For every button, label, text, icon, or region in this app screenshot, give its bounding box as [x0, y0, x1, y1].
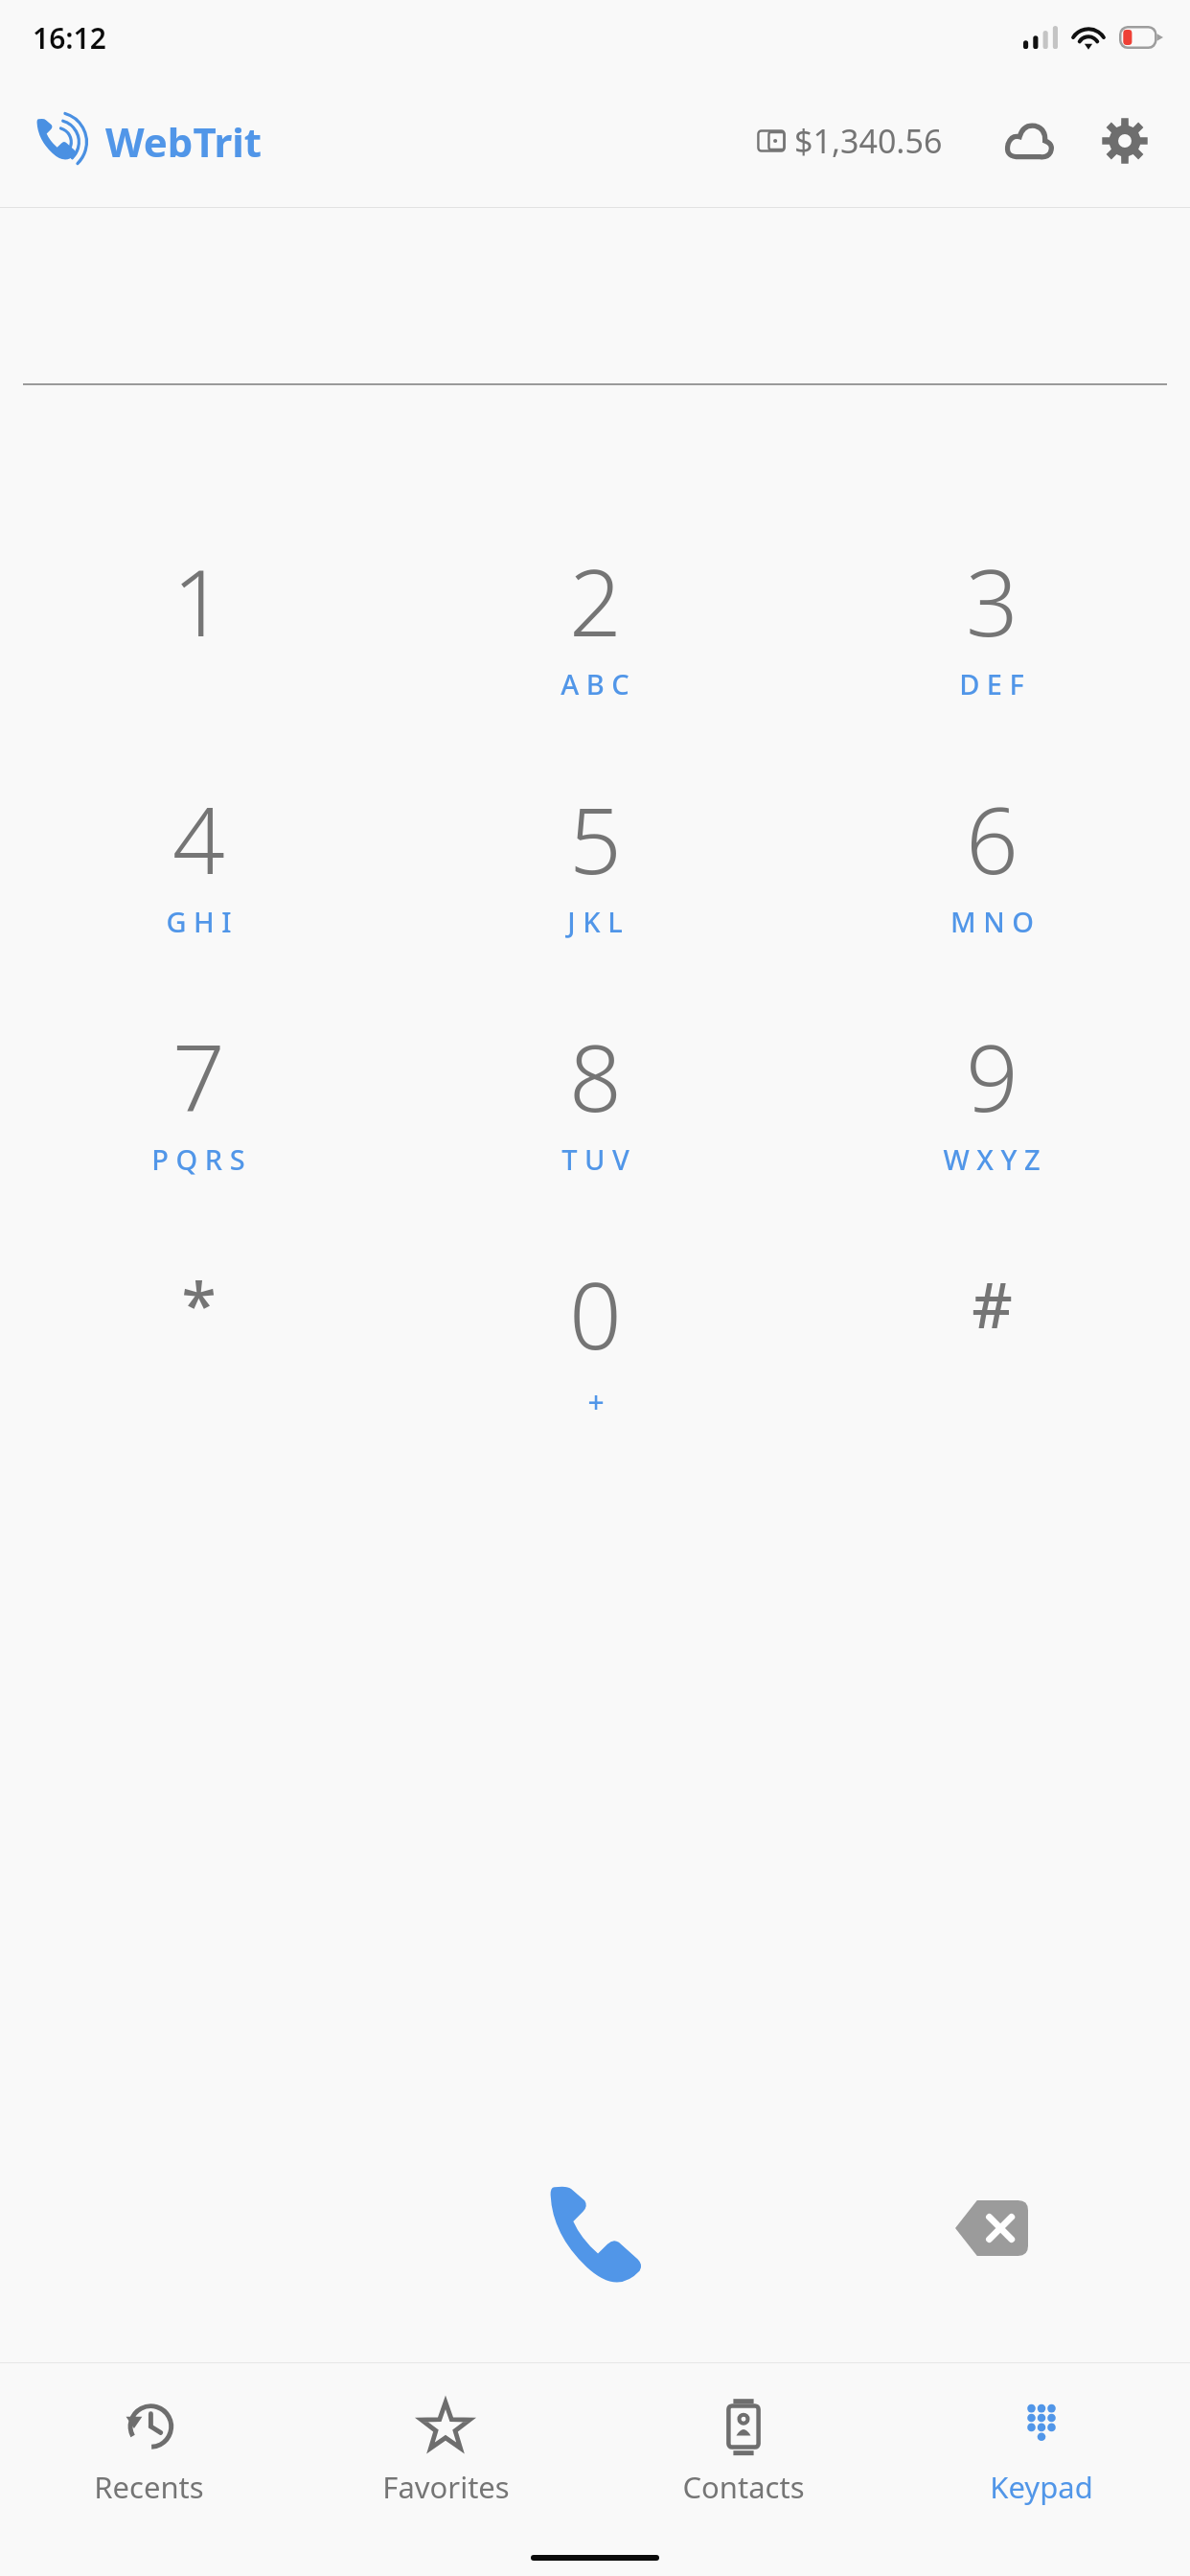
staticText: 2 — [569, 538, 622, 663]
button[interactable]: $1,340.56 — [750, 109, 949, 172]
staticText: A B C — [561, 665, 629, 702]
button[interactable]: 7 — [0, 1013, 397, 1251]
staticText: P Q R S — [151, 1140, 245, 1178]
button[interactable]: Call — [397, 2142, 793, 2314]
staticText: J K L — [567, 903, 623, 940]
button[interactable]: 3 — [793, 538, 1190, 775]
staticText: $1,340.56 — [794, 119, 943, 163]
button[interactable]: 1 — [0, 538, 397, 775]
button[interactable]: WebTrit — [33, 111, 263, 171]
staticText: 5 — [569, 775, 622, 901]
staticText: 7 — [172, 1013, 225, 1138]
button[interactable]: Recents — [0, 2363, 297, 2521]
staticText: 1 — [172, 538, 225, 663]
staticText: 9 — [966, 1013, 1018, 1138]
staticText: Recents — [94, 2467, 204, 2507]
button[interactable]: Cloud sync — [993, 104, 1065, 177]
staticText: 4 — [172, 775, 225, 901]
staticText: 3 — [966, 538, 1018, 663]
staticText: W X Y Z — [943, 1140, 1041, 1178]
staticText: T U V — [561, 1140, 629, 1178]
button[interactable]: 9 — [793, 1013, 1190, 1251]
button[interactable]: 5 — [397, 775, 793, 1013]
button[interactable]: # — [793, 1251, 1190, 1488]
staticText: # — [972, 1260, 1013, 1346]
staticText: 6 — [966, 775, 1018, 901]
staticText: Contacts — [682, 2467, 805, 2507]
staticText: Favorites — [382, 2467, 510, 2507]
staticText: D E F — [959, 665, 1024, 702]
staticText: WebTrit — [105, 114, 263, 169]
button[interactable]: * — [0, 1251, 397, 1488]
button[interactable]: Backspace — [793, 2142, 1190, 2314]
button[interactable]: 2 — [397, 538, 793, 775]
staticText: 16:12 — [33, 18, 106, 57]
staticText: Keypad — [990, 2467, 1093, 2507]
staticText: M N O — [950, 903, 1034, 940]
staticText: * — [181, 1260, 217, 1346]
button[interactable]: 4 — [0, 775, 397, 1013]
staticText: G H I — [166, 903, 232, 940]
button[interactable]: 6 — [793, 775, 1190, 1013]
button[interactable]: Keypad — [892, 2363, 1190, 2521]
button[interactable]: 8 — [397, 1013, 793, 1251]
button[interactable]: Contacts — [594, 2363, 892, 2521]
staticText: 8 — [569, 1013, 622, 1138]
button[interactable]: Favorites — [297, 2363, 594, 2521]
button[interactable]: Settings — [1088, 104, 1161, 177]
staticText: + — [587, 1382, 605, 1421]
button[interactable]: 0 — [397, 1251, 793, 1488]
staticText: 0 — [569, 1251, 622, 1376]
